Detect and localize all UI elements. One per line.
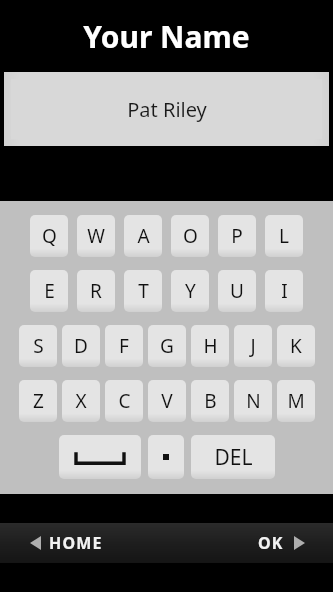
staticText: H xyxy=(203,333,218,359)
button[interactable]: Q xyxy=(30,215,68,257)
button[interactable]: B xyxy=(191,380,229,422)
button[interactable]: F xyxy=(105,325,143,367)
button[interactable]: OK xyxy=(258,532,305,554)
staticText: R xyxy=(90,278,102,304)
staticText: D xyxy=(74,333,88,359)
button[interactable]: Period xyxy=(148,435,184,479)
button[interactable]: D xyxy=(62,325,100,367)
staticText: N xyxy=(246,388,261,414)
button[interactable]: O xyxy=(171,215,209,257)
button[interactable]: M xyxy=(277,380,315,422)
button[interactable]: H xyxy=(191,325,229,367)
button[interactable]: Z xyxy=(19,380,57,422)
staticText: U xyxy=(230,278,244,304)
staticText: J xyxy=(250,333,256,359)
button[interactable]: Y xyxy=(171,270,209,312)
button[interactable]: Space xyxy=(59,435,141,479)
button[interactable]: R xyxy=(77,270,115,312)
staticText: OK xyxy=(258,532,284,554)
button[interactable]: E xyxy=(30,270,68,312)
button[interactable]: S xyxy=(19,325,57,367)
staticText: P xyxy=(231,223,243,249)
button[interactable]: V xyxy=(148,380,186,422)
staticText: Your Name xyxy=(83,16,250,57)
button[interactable]: P xyxy=(218,215,256,257)
staticText: B xyxy=(204,388,217,414)
button[interactable]: T xyxy=(124,270,162,312)
staticText: W xyxy=(87,223,105,249)
staticText: T xyxy=(138,278,149,304)
button[interactable]: U xyxy=(218,270,256,312)
button[interactable]: HOME xyxy=(30,532,103,554)
staticText: S xyxy=(33,333,44,359)
staticText: A xyxy=(137,223,150,249)
staticText: HOME xyxy=(49,532,103,554)
button[interactable]: Pat Riley xyxy=(4,72,329,146)
button[interactable]: N xyxy=(234,380,272,422)
staticText: O xyxy=(183,223,198,249)
staticText: E xyxy=(44,278,55,304)
staticText: Y xyxy=(185,278,196,304)
staticText: Z xyxy=(33,388,44,414)
staticText: K xyxy=(290,333,302,359)
button[interactable]: X xyxy=(62,380,100,422)
staticText: Pat Riley xyxy=(127,96,207,123)
button[interactable]: K xyxy=(277,325,315,367)
staticText: L xyxy=(279,223,289,249)
staticText: G xyxy=(160,333,174,359)
staticText: V xyxy=(161,388,173,414)
button[interactable]: DEL xyxy=(191,435,275,479)
staticText: Q xyxy=(42,223,57,249)
button[interactable]: A xyxy=(124,215,162,257)
staticText: I xyxy=(281,278,288,304)
button[interactable]: J xyxy=(234,325,272,367)
staticText: C xyxy=(118,388,131,414)
staticText: X xyxy=(75,388,87,414)
button[interactable]: I xyxy=(265,270,303,312)
staticText: M xyxy=(287,388,305,414)
staticText: DEL xyxy=(214,443,253,472)
button[interactable]: G xyxy=(148,325,186,367)
staticText: F xyxy=(119,333,129,359)
button[interactable]: W xyxy=(77,215,115,257)
button[interactable]: L xyxy=(265,215,303,257)
button[interactable]: C xyxy=(105,380,143,422)
